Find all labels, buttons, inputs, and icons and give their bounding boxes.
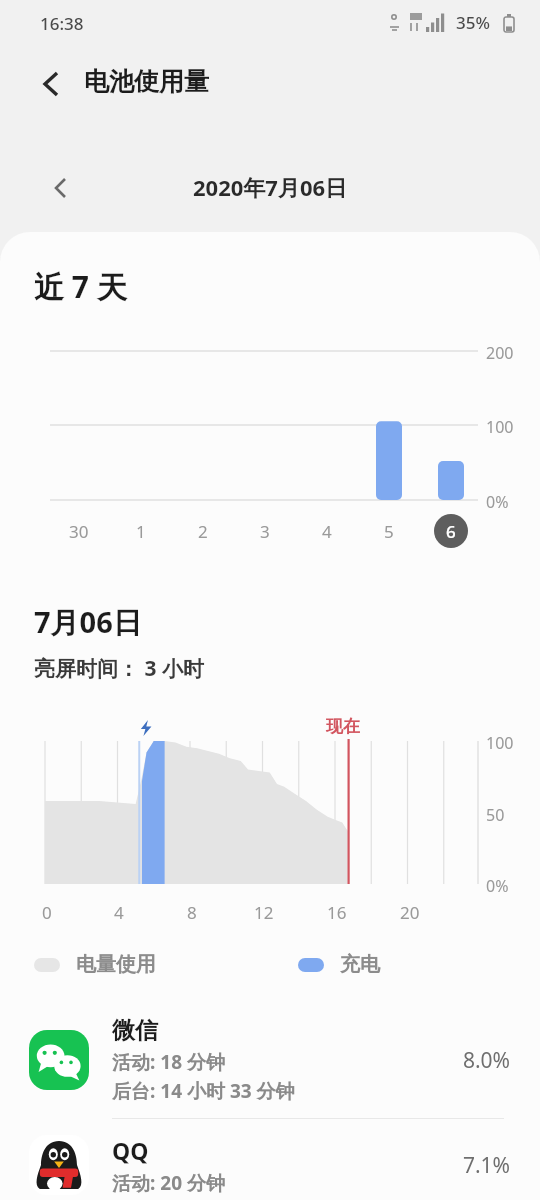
staticText: 16:38 — [40, 12, 84, 35]
staticText: 2 — [198, 520, 208, 543]
button[interactable]: 5 — [372, 514, 406, 548]
staticText: 30 — [69, 520, 89, 543]
staticText: 4 — [322, 520, 332, 543]
staticText: 8.0% — [462, 1046, 510, 1075]
staticText: 7月06日 — [34, 602, 142, 642]
button[interactable]: 30 — [62, 514, 96, 548]
staticText: 35% — [456, 11, 490, 34]
staticText: 2020年7月06日 — [193, 172, 348, 202]
button[interactable]: 2 — [186, 514, 220, 548]
button[interactable]: 6 — [434, 514, 468, 548]
button[interactable]: QQ — [0, 1119, 540, 1200]
staticText: 后台: 14 小时 33 分钟 — [112, 1078, 295, 1104]
staticText: 现在 — [326, 716, 360, 737]
staticText: 近 7 天 — [34, 266, 127, 307]
staticText: 8 — [187, 901, 197, 924]
staticText: 100 — [486, 416, 514, 438]
button[interactable]: 微信 — [0, 1002, 540, 1118]
staticText: 7.1% — [462, 1151, 510, 1180]
staticText: 16 — [327, 901, 347, 924]
button[interactable]: Back — [26, 62, 70, 106]
button[interactable]: 电量使用 — [34, 952, 156, 977]
staticText: 1 — [136, 520, 146, 543]
button[interactable]: 3 — [248, 514, 282, 548]
button[interactable]: Previous day — [36, 166, 80, 210]
button[interactable]: 4 — [310, 514, 344, 548]
staticText: 0% — [486, 875, 509, 897]
staticText: 电池使用量 — [84, 66, 209, 97]
staticText: 电量使用 — [76, 952, 156, 977]
staticText: 200 — [486, 342, 514, 364]
staticText: 100 — [486, 732, 514, 754]
staticText: 微信 — [112, 1016, 158, 1045]
staticText: 3 — [260, 520, 270, 543]
staticText: 活动: 18 分钟 — [112, 1049, 225, 1075]
staticText: QQ — [112, 1135, 149, 1166]
staticText: 5 — [384, 520, 394, 543]
button[interactable]: 1 — [124, 514, 158, 548]
staticText: 50 — [486, 804, 505, 826]
button[interactable]: 充电 — [298, 952, 380, 977]
staticText: 6 — [446, 520, 456, 543]
staticText: 亮屏时间： 3 小时 — [34, 654, 204, 683]
staticText: 充电 — [340, 952, 380, 977]
staticText: 0% — [486, 491, 509, 513]
staticText: 20 — [400, 901, 420, 924]
staticText: 4 — [114, 901, 124, 924]
staticText: 0 — [42, 901, 52, 924]
staticText: 活动: 20 分钟 — [112, 1170, 225, 1196]
staticText: 12 — [254, 901, 274, 924]
